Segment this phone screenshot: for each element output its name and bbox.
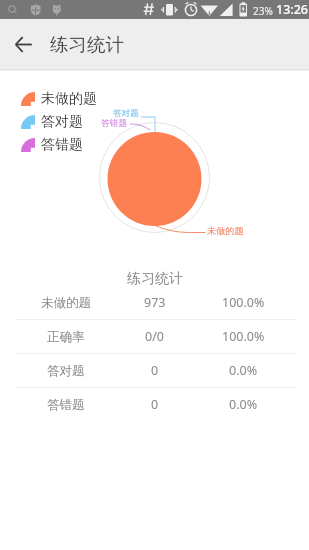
staticText: 未做的题 (41, 90, 97, 108)
staticText: 0.0% (229, 396, 258, 413)
staticText: 23% (253, 4, 273, 18)
staticText: 13:26 (276, 1, 309, 18)
button[interactable]: 答对题 (0, 354, 309, 387)
staticText: 0/0 (145, 328, 164, 345)
staticText: 0 (151, 396, 159, 413)
staticText: 未做的题 (41, 295, 91, 311)
staticText: 答对题 (47, 363, 85, 379)
staticText: 练习统计 (127, 270, 183, 288)
button[interactable]: 未做的题 (0, 286, 309, 319)
button[interactable]: 正确率 (0, 320, 309, 353)
staticText: 答错题 (47, 397, 85, 413)
staticText: 练习统计 (50, 33, 124, 56)
staticText: 0.0% (229, 362, 258, 379)
button[interactable]: 答错题 (0, 388, 309, 421)
button[interactable]: Back (0, 19, 47, 69)
staticText: 100.0% (222, 294, 265, 311)
staticText: 正确率 (47, 329, 85, 345)
staticText: 答错题 (41, 136, 83, 154)
staticText: 答错题 (101, 118, 128, 129)
staticText: 0 (151, 362, 159, 379)
staticText: 未做的题 (207, 225, 244, 237)
staticText: 答对题 (113, 108, 139, 119)
staticText: 答对题 (41, 113, 83, 131)
staticText: 973 (144, 294, 166, 311)
staticText: 100.0% (222, 328, 265, 345)
